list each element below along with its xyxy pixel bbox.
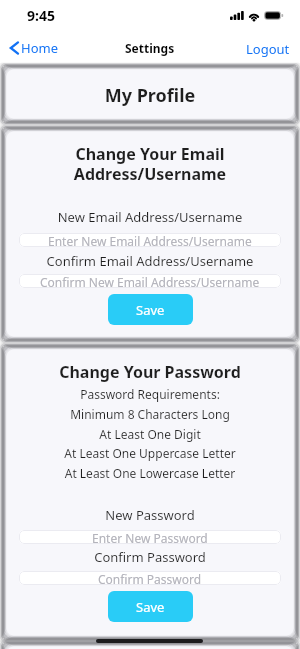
button[interactable]: Confirm New Email Address/Username <box>19 274 281 288</box>
other: Cellular signal <box>230 11 244 20</box>
staticText: Settings <box>125 40 175 56</box>
staticText: New Email Address/Username <box>0 208 300 226</box>
staticText: At Least One Digit <box>0 426 300 442</box>
staticText: Change Your Password <box>0 361 300 383</box>
button[interactable]: Enter New Password <box>19 530 281 544</box>
staticText: Confirm New Email Address/Username <box>40 274 260 288</box>
button[interactable]: Enter New Email Address/Username <box>19 233 281 247</box>
staticText: At Least One Uppercase Letter <box>0 445 300 461</box>
button[interactable]: Logout <box>244 38 292 60</box>
staticText: Confirm Email Address/Username <box>0 252 300 270</box>
staticText: Minimum 8 Characters Long <box>0 406 300 422</box>
staticText: Enter New Password <box>92 530 208 544</box>
staticText: Address/Username <box>0 163 300 185</box>
staticText: New Password <box>0 506 300 524</box>
button[interactable]: Save <box>108 591 193 622</box>
staticText: Enter New Email Address/Username <box>48 233 252 247</box>
staticText: Logout <box>246 40 290 58</box>
staticText: My Profile <box>0 83 300 108</box>
staticText: At Least One Lowercase Letter <box>0 465 300 481</box>
staticText: Home <box>21 39 58 57</box>
staticText: Change Your Email <box>0 143 300 165</box>
staticText: Save <box>136 301 165 319</box>
other: Battery <box>264 11 284 20</box>
staticText: Password Requirements: <box>0 386 300 402</box>
staticText: Confirm Password <box>98 571 202 585</box>
button[interactable]: Confirm Password <box>19 571 281 585</box>
button[interactable]: Home <box>7 37 60 59</box>
other: Wi-Fi <box>248 11 260 21</box>
staticText: 9:45 <box>27 6 55 25</box>
button[interactable]: Save <box>108 294 193 325</box>
staticText: Save <box>136 598 165 616</box>
staticText: Confirm Password <box>0 548 300 566</box>
